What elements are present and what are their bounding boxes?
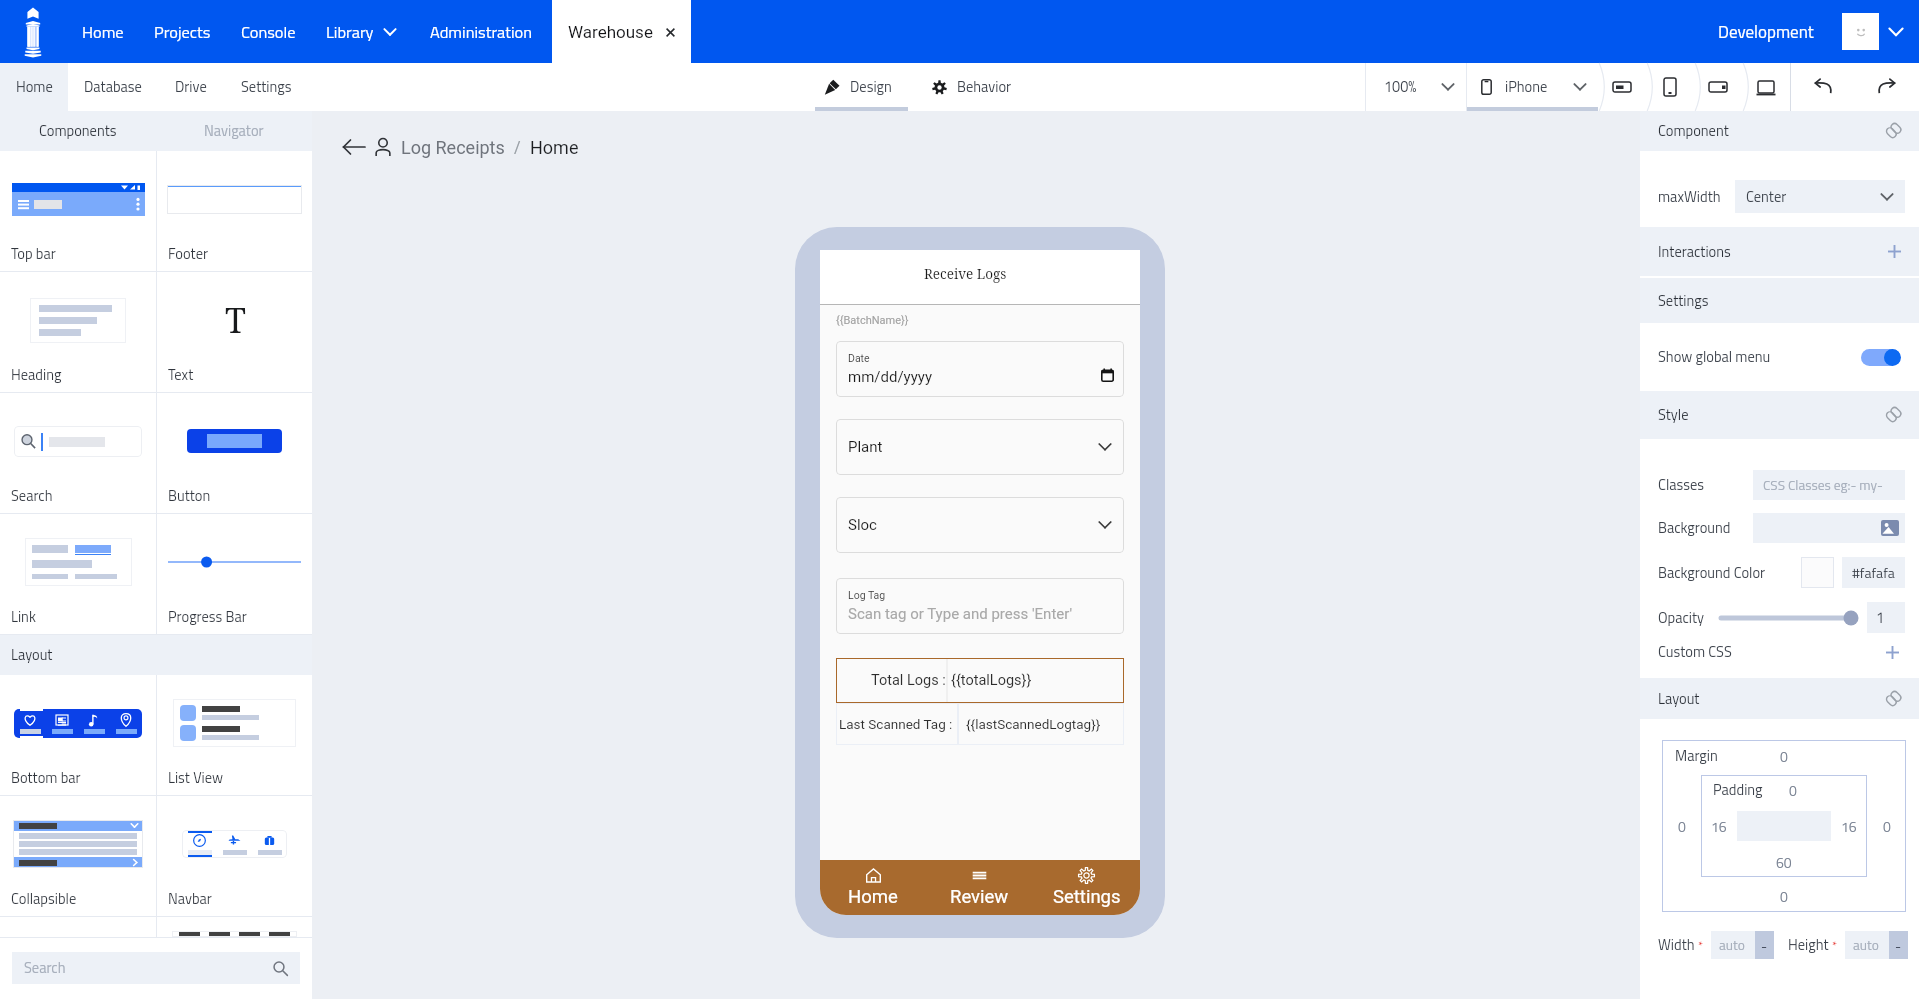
button[interactable]: Navbar xyxy=(157,796,312,916)
staticText: Projects xyxy=(154,19,211,44)
staticText: Progress Bar xyxy=(168,606,247,628)
staticText: - xyxy=(1895,935,1902,956)
button[interactable]: auto xyxy=(1845,931,1908,959)
button[interactable]: Behavior xyxy=(908,63,1030,111)
button[interactable]: Close tab xyxy=(666,28,675,37)
button[interactable]: Link styles xyxy=(1885,690,1903,708)
staticText: Width xyxy=(1658,934,1695,956)
button[interactable]: Progress Bar xyxy=(157,514,312,634)
button[interactable]: Settings xyxy=(1033,860,1140,915)
staticText: / xyxy=(514,138,521,157)
staticText: 16 xyxy=(1711,816,1727,837)
button[interactable]: Link styles xyxy=(1885,406,1903,424)
button[interactable]: Undo xyxy=(1791,63,1855,111)
button[interactable]: Date xyxy=(836,341,1124,397)
button[interactable]: auto xyxy=(1711,931,1774,959)
staticText: Home xyxy=(82,19,124,44)
staticText: Library xyxy=(326,19,374,44)
button[interactable]: iPhone xyxy=(1467,63,1598,111)
button[interactable]: Background image xyxy=(1753,513,1905,543)
button[interactable]: Custom CSS xyxy=(1640,641,1919,663)
button[interactable]: Add interaction xyxy=(1886,243,1903,260)
button[interactable]: Phone preview xyxy=(1646,63,1694,111)
staticText: * xyxy=(1832,936,1838,954)
button[interactable]: Navigator xyxy=(156,111,312,151)
button[interactable]: List View xyxy=(157,675,312,795)
button[interactable]: Console xyxy=(226,0,311,63)
button[interactable]: Center xyxy=(1735,180,1905,213)
button[interactable]: Home logo xyxy=(24,6,42,58)
button[interactable]: Sloc xyxy=(836,497,1124,553)
button[interactable]: Warehouse xyxy=(552,0,691,63)
staticText: T xyxy=(225,297,246,343)
button[interactable]: Collapsible xyxy=(0,796,156,916)
button[interactable]: Back xyxy=(342,135,366,159)
button[interactable]: Top bar xyxy=(0,151,156,271)
staticText: Log Tag xyxy=(848,589,886,601)
button[interactable]: Account menu xyxy=(1885,21,1907,43)
button[interactable]: Account avatar xyxy=(1842,13,1879,50)
staticText: Receive Logs xyxy=(924,265,1007,283)
staticText: Behavior xyxy=(957,76,1012,98)
button[interactable]: Link styles xyxy=(1885,122,1903,140)
button[interactable]: Link xyxy=(0,514,156,634)
staticText: Margin xyxy=(1675,745,1718,767)
button[interactable] xyxy=(157,917,312,937)
staticText: * xyxy=(1698,936,1704,954)
button[interactable]: Search xyxy=(0,393,156,513)
staticText: Console xyxy=(241,19,296,44)
button[interactable]: Show global menu xyxy=(1640,346,1919,368)
staticText: 60 xyxy=(1776,852,1792,873)
button[interactable]: Button xyxy=(157,393,312,513)
button[interactable]: Library xyxy=(311,0,415,63)
button[interactable] xyxy=(1721,607,1859,629)
staticText: Drive xyxy=(175,76,207,98)
button[interactable]: Plant xyxy=(836,419,1124,475)
button[interactable]: #fafafa xyxy=(1842,557,1905,588)
staticText: 0 xyxy=(1780,746,1788,767)
button[interactable]: Design xyxy=(815,63,908,111)
staticText: Top bar xyxy=(11,243,56,265)
staticText: Search xyxy=(24,957,66,979)
button[interactable]: Landscape preview xyxy=(1598,63,1646,111)
button[interactable]: Redo xyxy=(1855,63,1919,111)
staticText: Classes xyxy=(1658,474,1705,496)
button[interactable]: Search xyxy=(12,952,300,984)
staticText: Review xyxy=(950,886,1009,908)
button[interactable]: Components xyxy=(0,111,156,151)
staticText: Interactions xyxy=(1658,241,1731,263)
button[interactable]: Bottom bar xyxy=(0,675,156,795)
staticText: Padding xyxy=(1713,779,1763,801)
staticText: Log Receipts xyxy=(401,137,505,158)
button[interactable]: Home xyxy=(67,0,139,63)
staticText: Heading xyxy=(11,364,62,386)
button[interactable]: Review xyxy=(926,860,1033,915)
button[interactable]: Database xyxy=(68,63,159,111)
button[interactable]: Projects xyxy=(139,0,226,63)
button[interactable]: Heading xyxy=(0,272,156,392)
button[interactable]: 100% xyxy=(1366,63,1466,111)
button[interactable]: Tablet preview xyxy=(1694,63,1742,111)
button[interactable]: T xyxy=(157,272,312,392)
button[interactable]: Footer xyxy=(157,151,312,271)
button[interactable]: Drive xyxy=(159,63,224,111)
button[interactable]: CSS Classes eg:- my-button xyxy=(1753,470,1905,500)
button[interactable]: Desktop preview xyxy=(1742,63,1790,111)
button[interactable]: Pick colour xyxy=(1801,557,1834,588)
staticText: Last Scanned Tag : xyxy=(839,716,953,732)
staticText: Database xyxy=(84,76,142,98)
staticText: Settings xyxy=(1658,290,1709,312)
button[interactable]: Administration xyxy=(415,0,552,63)
button[interactable]: 1 xyxy=(1867,602,1905,633)
staticText: auto xyxy=(1719,935,1745,956)
button[interactable]: Home xyxy=(820,860,926,915)
button[interactable]: Log Receipts xyxy=(401,137,505,158)
staticText: Footer xyxy=(168,243,209,265)
button[interactable]: Development xyxy=(1712,19,1814,45)
button[interactable]: Home xyxy=(0,63,68,111)
button[interactable]: Log Tag xyxy=(836,578,1124,634)
button[interactable]: Settings xyxy=(224,63,309,111)
staticText: Scan tag or Type and press 'Enter' xyxy=(848,605,1073,623)
staticText: Navigator xyxy=(204,120,264,142)
